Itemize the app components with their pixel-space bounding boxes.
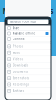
staticText: Documents xyxy=(13,70,28,73)
staticText: Photos xyxy=(13,45,23,48)
button[interactable]: Connect xyxy=(5,36,51,41)
staticText: Recordings xyxy=(13,83,29,86)
staticText: MANAGE YOUR FILES xyxy=(9,20,35,23)
button[interactable]: Photos xyxy=(5,43,51,50)
staticText: Videos xyxy=(13,57,23,61)
button[interactable]: Archives xyxy=(5,88,51,94)
staticText: Archives xyxy=(13,89,24,93)
staticText: Screenshots xyxy=(13,76,29,80)
button[interactable]: Share xyxy=(5,26,51,31)
button[interactable]: Videos xyxy=(5,56,51,62)
button[interactable]: Available offline xyxy=(5,31,51,36)
button[interactable]: Downloads xyxy=(5,62,51,69)
staticText: Connect xyxy=(12,37,24,41)
button[interactable]: Documents xyxy=(5,69,51,75)
staticText: Music xyxy=(13,51,20,54)
button[interactable]: Music xyxy=(5,50,51,56)
staticText: Available offline xyxy=(12,32,35,35)
staticText: Manage files xyxy=(2,6,53,16)
staticText: Downloads xyxy=(13,64,28,67)
button[interactable]: Screenshots xyxy=(5,75,51,81)
button[interactable]: Recordings xyxy=(5,81,51,88)
staticText: Share xyxy=(12,26,19,30)
